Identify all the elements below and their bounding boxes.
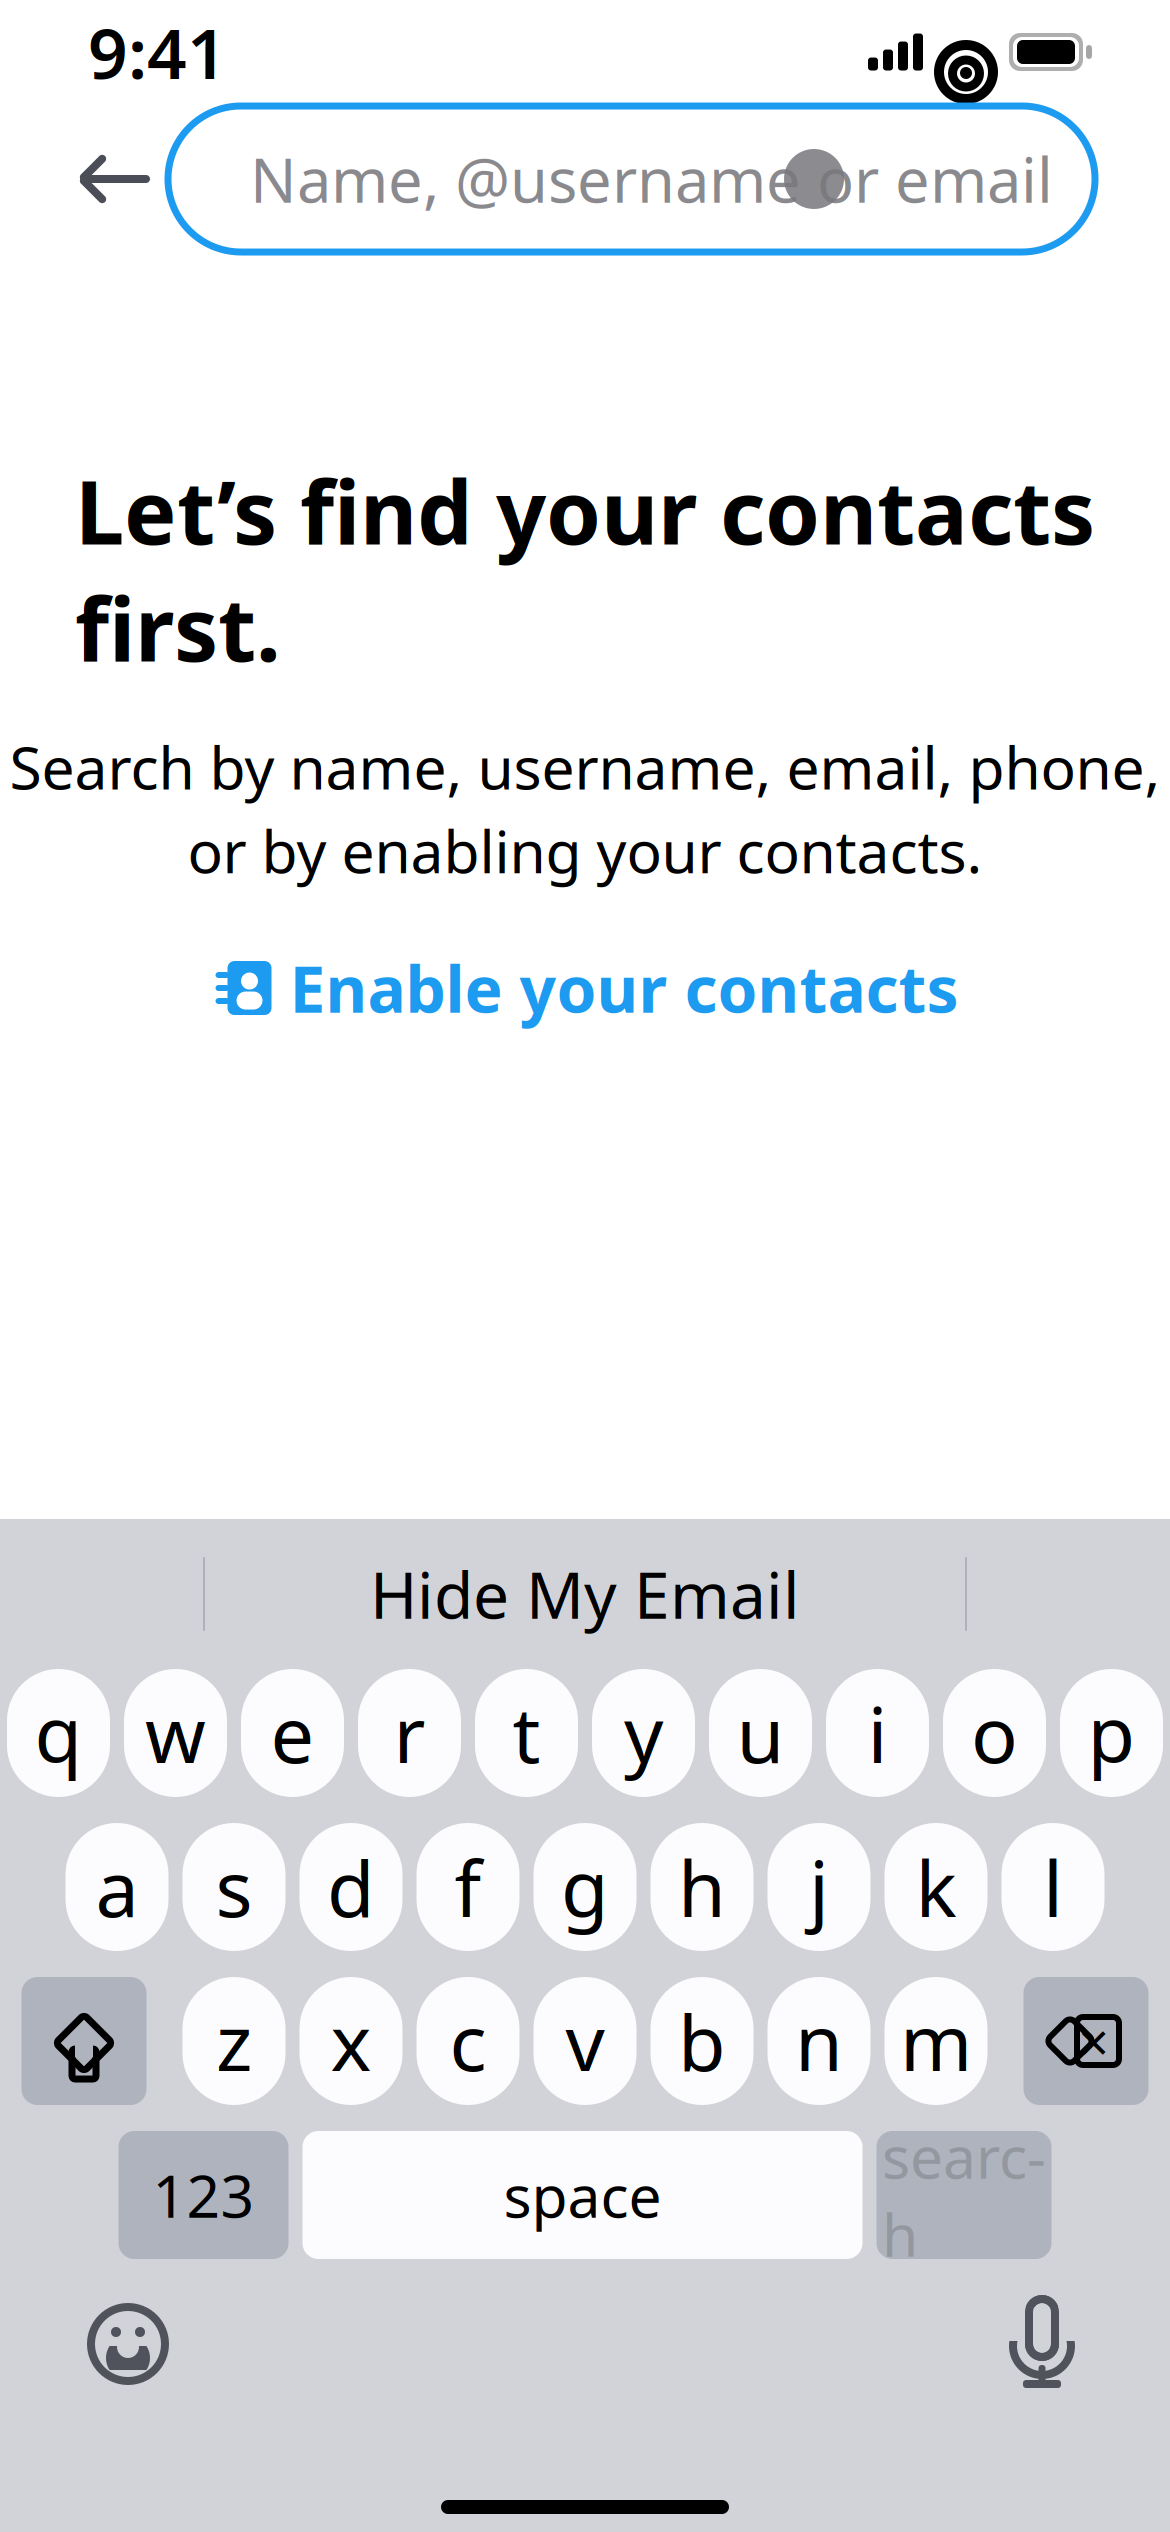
staticText: 123 <box>152 2156 254 2234</box>
staticText: l <box>1043 1836 1063 1938</box>
button[interactable]: t <box>475 1669 578 1797</box>
button[interactable]: u <box>709 1669 812 1797</box>
staticText: h <box>678 1836 726 1938</box>
button[interactable]: Dictate <box>982 2289 1102 2399</box>
button[interactable]: s <box>182 1823 285 1951</box>
staticText: w <box>145 1682 206 1784</box>
staticText: or by enabling your contacts. <box>187 812 982 889</box>
button[interactable]: x <box>299 1977 402 2105</box>
staticText: 9:41 <box>88 6 227 98</box>
staticText: c <box>449 1990 486 2092</box>
button[interactable]: z <box>182 1977 285 2105</box>
button[interactable]: y <box>592 1669 695 1797</box>
button[interactable]: 123 <box>118 2131 288 2259</box>
button[interactable]: e <box>241 1669 344 1797</box>
button[interactable]: j <box>767 1823 870 1951</box>
button[interactable]: n <box>767 1977 870 2105</box>
staticText: p <box>1087 1682 1135 1784</box>
staticText: × <box>1078 2006 1109 2076</box>
staticText: d <box>327 1836 375 1938</box>
staticText: n <box>795 1990 843 2092</box>
staticText: k <box>915 1836 956 1938</box>
staticText: v <box>565 1990 604 2092</box>
staticText: Search by name, username, email, phone, <box>9 728 1160 806</box>
staticText: Hide My Email <box>370 1551 800 1636</box>
button[interactable]: g <box>533 1823 636 1951</box>
staticText: i <box>867 1682 887 1784</box>
staticText: f <box>454 1836 481 1938</box>
staticText: e <box>270 1682 314 1784</box>
button[interactable]: m <box>884 1977 987 2105</box>
staticText: o <box>971 1682 1018 1784</box>
button[interactable]: Enable your contacts <box>195 935 974 1040</box>
staticText: m <box>900 1990 972 2092</box>
button[interactable]: i <box>826 1669 929 1797</box>
button[interactable]: space <box>302 2131 862 2259</box>
staticText: Let’s find your contacts first. <box>75 452 1095 686</box>
staticText: z <box>216 1990 252 2092</box>
staticText: r <box>393 1682 425 1784</box>
button[interactable]: Hide My Email <box>370 1551 800 1636</box>
staticText: Enable your contacts <box>289 945 958 1030</box>
staticText: a <box>95 1836 138 1938</box>
button[interactable]: Emoji <box>68 2289 188 2399</box>
button[interactable]: a <box>65 1823 168 1951</box>
button[interactable]: l <box>1001 1823 1104 1951</box>
button[interactable]: h <box>650 1823 753 1951</box>
staticText: x <box>330 1990 371 2092</box>
button[interactable]: p <box>1060 1669 1163 1797</box>
staticText: b <box>678 1990 726 2092</box>
staticText: s <box>215 1836 252 1938</box>
staticText: q <box>34 1682 82 1784</box>
button[interactable]: w <box>124 1669 227 1797</box>
button[interactable]: Delete <box>1023 1977 1148 2105</box>
button[interactable]: c <box>416 1977 519 2105</box>
staticText: search <box>882 2117 1046 2273</box>
button[interactable]: k <box>884 1823 987 1951</box>
button[interactable]: v <box>533 1977 636 2105</box>
staticText: t <box>512 1682 540 1784</box>
staticText: u <box>736 1682 784 1784</box>
button[interactable]: Name, @username or email <box>168 106 1095 252</box>
button[interactable]: o <box>943 1669 1046 1797</box>
button[interactable]: d <box>299 1823 402 1951</box>
button[interactable]: b <box>650 1977 753 2105</box>
staticText: Name, @username or email <box>250 138 1053 220</box>
button[interactable]: Shift <box>21 1977 146 2105</box>
button[interactable]: search <box>876 2131 1051 2259</box>
button[interactable]: q <box>7 1669 110 1797</box>
button[interactable]: r <box>358 1669 461 1797</box>
staticText: space <box>503 2156 661 2234</box>
staticText: y <box>624 1682 663 1784</box>
button[interactable]: f <box>416 1823 519 1951</box>
button[interactable]: Back <box>58 124 168 234</box>
staticText: g <box>561 1836 609 1938</box>
staticText: j <box>809 1836 829 1938</box>
